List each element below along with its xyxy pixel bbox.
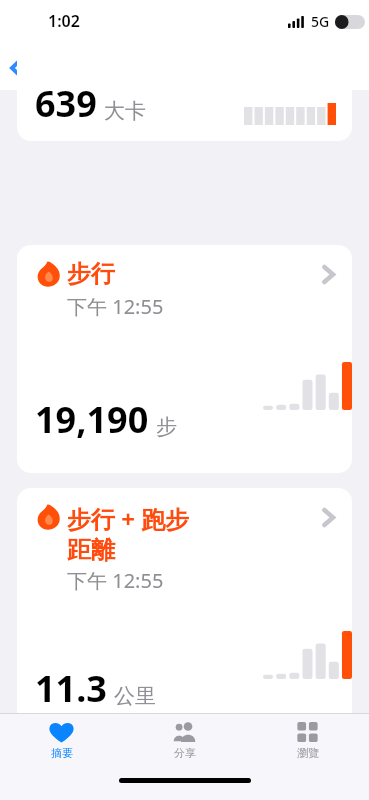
staticText: 公里 (114, 683, 156, 709)
staticText: 爬樓梯段數 (67, 763, 187, 793)
staticText: 瀏覽 (297, 746, 319, 760)
button[interactable]: 摘要 (0, 714, 123, 766)
button[interactable]: 步行 (17, 245, 352, 473)
staticText: 步行 + 跑步 (67, 502, 190, 535)
staticText: 下午 12:55 (67, 567, 164, 594)
button[interactable]: 639 (17, 46, 352, 141)
staticText: 1:02 (48, 10, 80, 32)
staticText: 19,190 (35, 395, 149, 444)
staticText: 摘要 (51, 746, 73, 760)
staticText: 下午 12:55 (67, 293, 164, 320)
button[interactable]: 分享 (123, 714, 246, 766)
staticText: 分享 (174, 746, 196, 760)
staticText: 距離 (67, 535, 115, 565)
button[interactable]: 瀏覽 (246, 714, 369, 766)
button[interactable]: 步行 + 跑步 (17, 488, 352, 735)
button[interactable]: 爬樓梯段數 (17, 749, 352, 800)
staticText: 639 (35, 79, 97, 128)
button[interactable]: 摘要 (8, 55, 66, 81)
staticText: 5G (311, 12, 330, 31)
staticText: 大卡 (104, 98, 146, 124)
staticText: 步行 (67, 259, 115, 289)
staticText: 11.3 (35, 664, 107, 713)
staticText: 步 (156, 414, 177, 440)
